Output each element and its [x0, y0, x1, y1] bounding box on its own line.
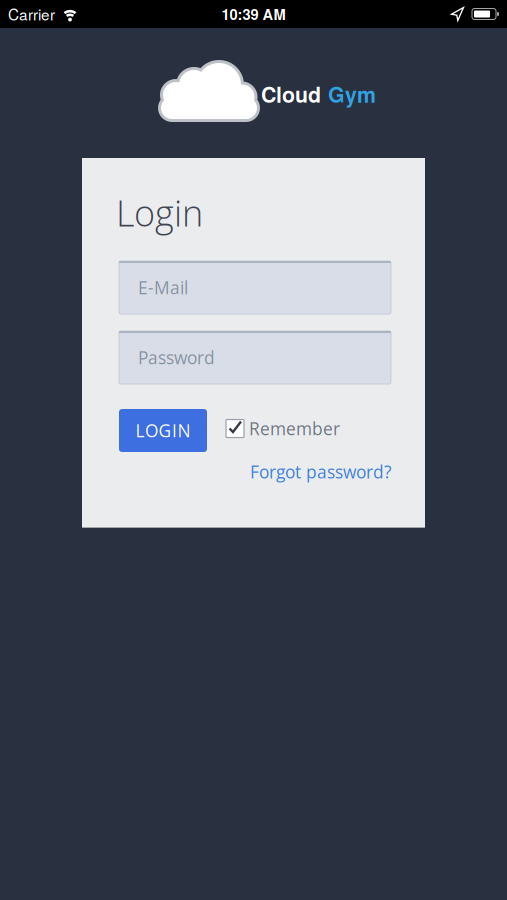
staticText: Carrier — [8, 3, 55, 25]
staticText: E-Mail — [138, 276, 188, 299]
staticText: Password — [138, 346, 215, 369]
button[interactable]: E-Mail — [119, 261, 391, 314]
button[interactable]: LOGIN — [119, 409, 207, 452]
staticText: Cloud — [261, 79, 321, 109]
staticText: LOGIN — [135, 419, 190, 442]
staticText: Remember — [249, 417, 340, 440]
staticText: Gym — [328, 79, 376, 109]
button[interactable]: Forgot password? — [250, 460, 391, 484]
button[interactable]: Password — [119, 331, 391, 384]
staticText: Login — [116, 188, 203, 237]
staticText: Forgot password? — [250, 460, 391, 484]
staticText: 10:39 AM — [221, 3, 285, 24]
button[interactable]: Remember — [226, 417, 340, 440]
